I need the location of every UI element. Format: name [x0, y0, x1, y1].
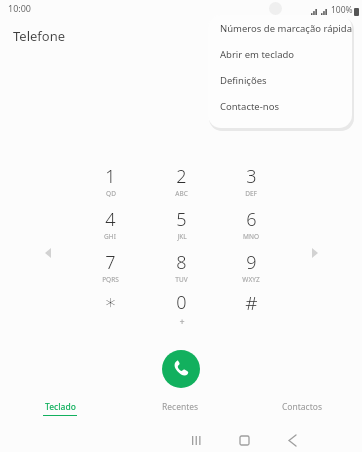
staticText: 100% — [331, 4, 353, 16]
button[interactable]: Call — [162, 350, 200, 388]
button[interactable]: 2 — [153, 164, 209, 198]
staticText: Telefone — [13, 27, 66, 45]
staticText: ∗ — [104, 290, 117, 313]
button[interactable]: # — [223, 290, 279, 324]
staticText: MNO — [243, 232, 259, 241]
button[interactable]: Next — [305, 243, 325, 263]
staticText: 9 — [246, 250, 257, 275]
staticText: # — [245, 290, 258, 316]
button[interactable]: Home — [229, 428, 259, 452]
staticText: JKL — [177, 232, 187, 241]
button[interactable]: 9 — [223, 250, 279, 284]
staticText: 6 — [246, 207, 257, 232]
staticText: 2 — [176, 164, 187, 189]
button[interactable]: Contactos — [241, 401, 362, 425]
button[interactable]: ∗ — [82, 290, 138, 324]
staticText: DEF — [245, 189, 257, 198]
button[interactable]: Contacte-nos — [208, 93, 352, 119]
staticText: QD — [106, 189, 116, 198]
staticText: Números de marcação rápida — [220, 22, 352, 35]
button[interactable]: Números de marcação rápida — [208, 15, 352, 41]
button[interactable]: 6 — [223, 207, 279, 241]
staticText: Teclado — [45, 401, 76, 413]
button[interactable]: Abrir em teclado — [208, 41, 352, 67]
staticText: 5 — [176, 207, 187, 232]
button[interactable]: 1 — [82, 164, 138, 198]
staticText: ABC — [175, 189, 188, 198]
button[interactable]: Recent apps — [181, 428, 211, 452]
staticText: 7 — [105, 250, 116, 275]
staticText: 0 — [176, 290, 187, 315]
button[interactable]: Definições — [208, 67, 352, 93]
button[interactable]: 3 — [223, 164, 279, 198]
button[interactable]: 4 — [82, 207, 138, 241]
staticText: 8 — [176, 250, 187, 275]
staticText: GHI — [104, 232, 116, 241]
staticText: Definições — [220, 74, 267, 87]
button[interactable]: Recentes — [120, 401, 241, 425]
staticText: Abrir em teclado — [220, 48, 295, 61]
staticText: Contactos — [282, 401, 322, 413]
button[interactable]: Teclado — [0, 401, 120, 425]
button[interactable]: Previous — [38, 243, 58, 263]
staticText: Contacte-nos — [220, 100, 279, 113]
button[interactable]: 7 — [82, 250, 138, 284]
staticText: WXYZ — [242, 275, 260, 284]
button[interactable]: 8 — [153, 250, 209, 284]
staticText: 10:00 — [8, 2, 32, 14]
staticText: 1 — [105, 164, 116, 189]
staticText: 3 — [246, 164, 257, 189]
staticText: PQRS — [102, 275, 119, 284]
staticText: Recentes — [162, 401, 199, 413]
staticText: 4 — [105, 207, 116, 232]
button[interactable]: Back — [277, 428, 307, 452]
button[interactable]: 5 — [153, 207, 209, 241]
staticText: TUV — [175, 275, 188, 284]
button[interactable]: 0 — [153, 290, 209, 324]
staticText: + — [179, 315, 185, 324]
